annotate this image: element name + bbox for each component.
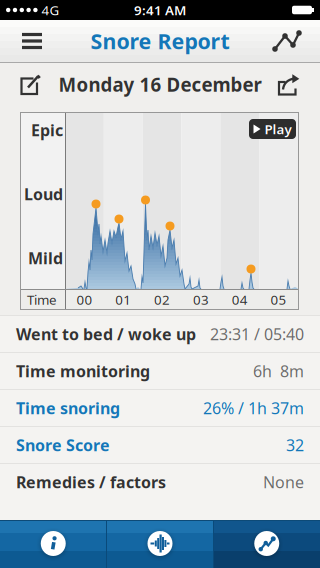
staticText: Remedies / factors bbox=[16, 471, 166, 493]
staticText: 23:31 / 05:40 bbox=[210, 323, 304, 345]
button[interactable]: Info bbox=[0, 521, 106, 568]
button[interactable]: Share bbox=[258, 63, 320, 106]
staticText: None bbox=[263, 471, 304, 493]
staticText: 02 bbox=[154, 291, 170, 308]
staticText: Snore Score bbox=[16, 434, 110, 456]
staticText: Monday 16 December bbox=[58, 72, 261, 97]
button[interactable]: Snore Report bbox=[213, 521, 320, 568]
staticText: Went to bed / woke up bbox=[16, 323, 196, 345]
button[interactable]: Trends bbox=[254, 20, 320, 62]
staticText: Play bbox=[264, 120, 291, 138]
staticText: 00 bbox=[76, 291, 92, 308]
button[interactable]: Play bbox=[249, 119, 296, 139]
staticText: 03 bbox=[193, 291, 209, 308]
staticText: Mild bbox=[28, 247, 63, 269]
staticText: 04 bbox=[232, 291, 248, 308]
button[interactable]: Menu bbox=[0, 20, 64, 62]
staticText: Epic bbox=[31, 119, 63, 141]
staticText: 4G bbox=[42, 1, 60, 19]
staticText: 32 bbox=[286, 434, 304, 456]
button[interactable]: Edit session bbox=[0, 63, 62, 106]
staticText: Snore Report bbox=[90, 27, 229, 55]
staticText: Time monitoring bbox=[16, 360, 150, 382]
staticText: 9:41 AM bbox=[134, 1, 186, 19]
staticText: Time snoring bbox=[16, 397, 120, 419]
staticText: 26% / 1h 37m bbox=[203, 397, 304, 419]
staticText: 01 bbox=[115, 291, 131, 308]
staticText: 6h 8m bbox=[253, 360, 304, 382]
button[interactable]: Record bbox=[106, 521, 213, 568]
staticText: 05 bbox=[271, 291, 287, 308]
staticText: Loud bbox=[24, 183, 63, 205]
staticText: Time bbox=[27, 291, 57, 308]
